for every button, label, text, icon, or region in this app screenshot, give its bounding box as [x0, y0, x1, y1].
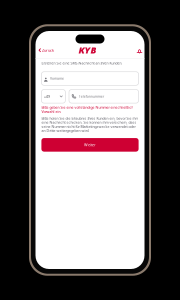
- staticText: Telefonnummer: [79, 94, 104, 99]
- staticText: Vorname: [50, 76, 64, 81]
- staticText: Zurück: [42, 48, 54, 53]
- staticText: KYB: [78, 44, 96, 56]
- button[interactable]: Zurück: [35, 46, 54, 54]
- staticText: Bitte holen Sie die Erlaubnis Ihres Kund…: [41, 116, 138, 133]
- staticText: +49: [44, 94, 50, 99]
- staticText: Bitte geben Sie eine vollständige Nummer…: [41, 105, 133, 114]
- staticText: Erstellen Sie eine SMS-Nachricht an Ihre…: [41, 61, 122, 66]
- staticText: Weiter: [84, 142, 96, 147]
- button[interactable]: Weiter: [41, 138, 139, 152]
- button[interactable]: Benachrichtigungen: [137, 47, 144, 54]
